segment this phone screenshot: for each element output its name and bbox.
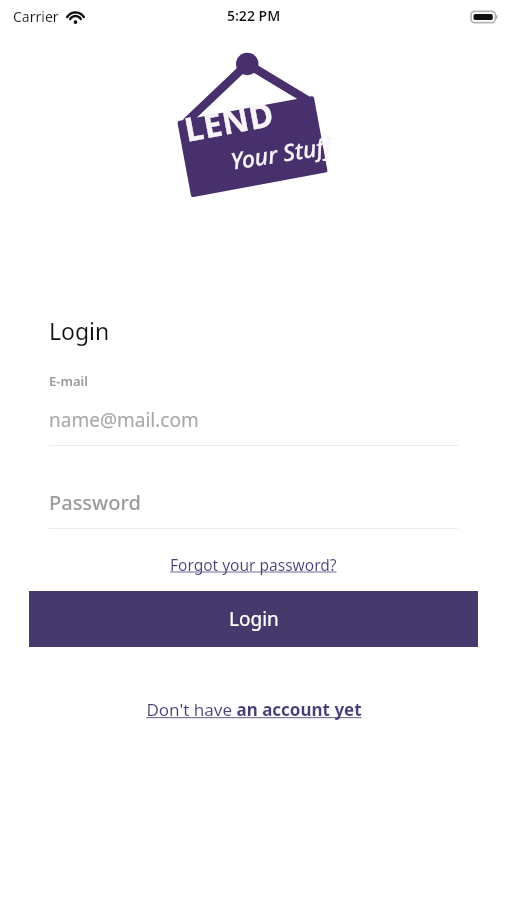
button[interactable]: Password — [0, 489, 507, 529]
staticText: Carrier — [13, 7, 59, 26]
staticText: Login — [49, 315, 110, 346]
staticText: Forgot your password? — [170, 554, 337, 575]
staticText: Your Stuff — [228, 129, 334, 176]
staticText: Don't have an account yet — [146, 698, 362, 721]
button[interactable]: E-mail — [0, 372, 507, 446]
staticText: Login — [229, 606, 279, 632]
button[interactable]: Forgot your password? — [164, 551, 343, 578]
button[interactable]: Login — [29, 591, 478, 647]
button[interactable]: Don't have an account yet — [140, 695, 368, 724]
staticText: LEND — [181, 91, 277, 152]
staticText: 5:22 PM — [227, 6, 281, 25]
staticText: E-mail — [49, 372, 88, 390]
staticText: name@mail.com — [49, 407, 199, 433]
staticText: Password — [49, 489, 141, 516]
